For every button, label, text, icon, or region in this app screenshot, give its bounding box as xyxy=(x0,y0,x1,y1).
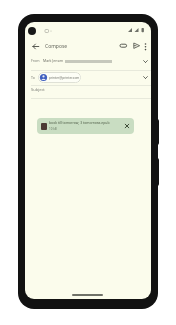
button[interactable] xyxy=(142,40,149,52)
staticText: To xyxy=(31,75,35,80)
staticText: From xyxy=(31,58,40,63)
staticText: printer@printer.com xyxy=(49,76,80,80)
button[interactable] xyxy=(119,41,128,50)
button[interactable]: From xyxy=(25,56,151,70)
button[interactable]: To xyxy=(25,70,151,85)
staticText: Mark Jensen xyxy=(43,58,64,63)
staticText: book till tomorrow, 3 tomorrows.epub xyxy=(49,120,110,125)
staticText: 10 kB xyxy=(49,127,57,131)
staticText: Subject xyxy=(31,87,45,92)
button[interactable]: Subject xyxy=(25,86,151,97)
button[interactable] xyxy=(132,41,141,50)
button[interactable] xyxy=(30,40,41,51)
button[interactable]: book till tomorrow, 3 tomorrows.epub xyxy=(37,118,134,134)
staticText: Compose xyxy=(45,43,68,50)
